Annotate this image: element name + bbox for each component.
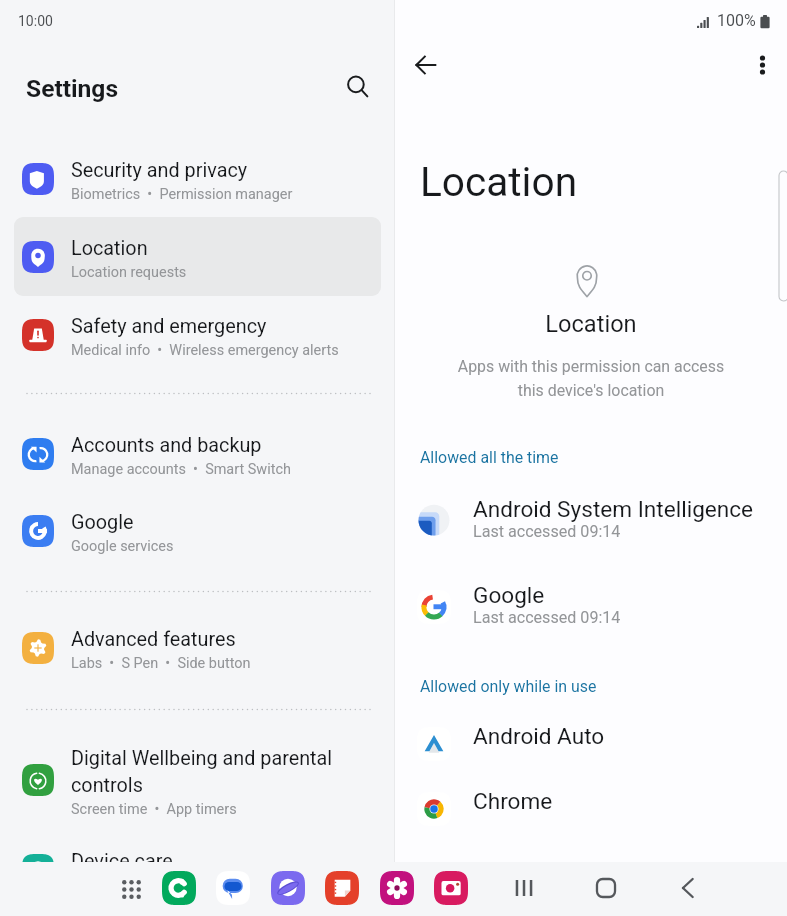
button[interactable]: Digital Wellbeing and parental controls — [14, 729, 381, 817]
staticText: Manage accounts • Smart Switch — [71, 461, 291, 478]
button[interactable]: More options — [740, 43, 784, 87]
staticText: Location — [420, 158, 578, 206]
staticText: Google — [71, 511, 134, 534]
button[interactable]: Camera — [434, 871, 468, 905]
staticText: Advanced features — [71, 628, 236, 651]
staticText: Allowed only while in use — [420, 677, 597, 696]
staticText: Location — [395, 310, 787, 338]
button[interactable]: Chrome — [411, 786, 781, 846]
button[interactable]: Device care — [14, 832, 381, 888]
button[interactable]: Back — [404, 43, 448, 87]
button[interactable]: Google — [411, 584, 781, 644]
button[interactable]: Phone — [162, 871, 196, 905]
button[interactable]: Accounts and backup — [14, 416, 381, 472]
staticText: Android Auto — [473, 723, 605, 749]
staticText: Device care — [71, 850, 173, 873]
button[interactable]: Internet — [271, 871, 305, 905]
staticText: Apps with this permission can access thi… — [395, 357, 787, 400]
button[interactable]: Security and privacy — [14, 141, 381, 197]
button[interactable]: Notes — [325, 871, 359, 905]
staticText: Chrome — [473, 788, 553, 814]
button[interactable]: Safety and emergency — [14, 297, 381, 353]
staticText: Location requests — [71, 264, 187, 281]
button[interactable]: Location — [14, 219, 381, 275]
button[interactable]: Advanced features — [14, 610, 381, 666]
staticText: Android System Intelligence — [473, 496, 754, 522]
staticText: 100% — [717, 11, 756, 30]
button[interactable]: Gallery — [380, 871, 414, 905]
button[interactable]: Android System Intelligence — [411, 498, 781, 558]
staticText: Medical info • Wireless emergency alerts — [71, 342, 339, 359]
staticText: Last accessed 09:14 — [473, 608, 621, 627]
staticText: Allowed all the time — [420, 448, 559, 467]
staticText: Labs • S Pen • Side button — [71, 655, 251, 672]
staticText: 10:00 — [18, 13, 53, 29]
button[interactable]: Google — [14, 493, 381, 549]
button[interactable]: Recents — [503, 866, 547, 910]
button[interactable]: Apps — [114, 872, 148, 906]
staticText: Safety and emergency — [71, 315, 267, 338]
staticText: Digital Wellbeing and parental controls — [71, 747, 333, 797]
staticText: Accounts and backup — [71, 434, 262, 457]
button[interactable]: Android Auto — [411, 721, 781, 781]
staticText: Settings — [26, 74, 119, 103]
staticText: Google — [473, 582, 545, 608]
staticText: Security and privacy — [71, 159, 248, 182]
staticText: Google services — [71, 538, 174, 555]
staticText: Last accessed 09:14 — [473, 522, 621, 541]
button[interactable]: Back — [670, 866, 714, 910]
staticText: Screen time • App timers — [71, 801, 237, 818]
staticText: Location — [71, 237, 148, 260]
button[interactable]: Home — [584, 866, 628, 910]
button[interactable]: Messages — [216, 871, 250, 905]
button[interactable]: Search — [338, 67, 378, 107]
staticText: Biometrics • Permission manager — [71, 186, 293, 203]
